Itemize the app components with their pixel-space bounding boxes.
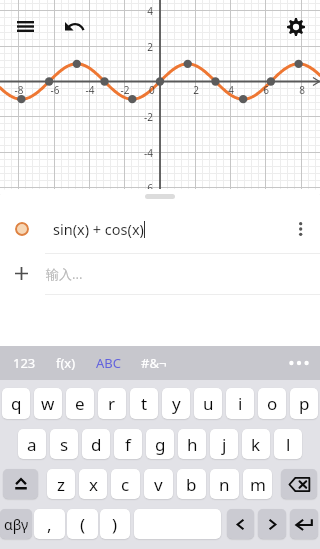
staticText: #&¬ (141, 354, 167, 372)
button[interactable]: More (278, 346, 320, 380)
button[interactable]: x (79, 469, 107, 499)
staticText: -2 (133, 110, 153, 124)
button[interactable]: p (290, 388, 318, 419)
staticText: s (60, 433, 69, 456)
staticText: 0 (149, 83, 155, 97)
staticText: a (27, 433, 37, 456)
button[interactable]: d (82, 429, 110, 459)
button[interactable]: f(x) (46, 346, 86, 380)
staticText: d (91, 433, 102, 456)
staticText: k (251, 433, 261, 456)
button[interactable]: k (242, 429, 270, 459)
staticText: -6 (133, 181, 153, 195)
staticText: ( (80, 513, 86, 536)
staticText: 输入... (46, 265, 83, 283)
staticText: -4 (133, 146, 153, 160)
button[interactable]: t (130, 388, 158, 419)
button[interactable]: s (50, 429, 78, 459)
staticText: v (154, 473, 163, 496)
button[interactable]: r (98, 388, 126, 419)
staticText: 123 (13, 354, 36, 372)
button[interactable]: u (194, 388, 222, 419)
button[interactable]: v (144, 469, 173, 499)
button[interactable]: l (274, 429, 302, 459)
staticText: -2 (115, 83, 135, 97)
staticText: n (219, 473, 230, 496)
button[interactable]: f (114, 429, 142, 459)
button[interactable]: Settings (275, 6, 316, 47)
button[interactable]: e (66, 388, 94, 419)
staticText: e (75, 392, 85, 415)
staticText: f (125, 433, 131, 456)
button[interactable]: Undo (54, 6, 95, 47)
button[interactable]: w (34, 388, 62, 419)
staticText: c (121, 473, 130, 496)
button[interactable]: Menu (4, 6, 46, 47)
button[interactable]: More options (278, 204, 320, 254)
button[interactable]: g (146, 429, 174, 459)
staticText: 6 (256, 83, 276, 97)
staticText: -8 (9, 83, 29, 97)
button[interactable]: o (258, 388, 286, 419)
staticText: 2 (186, 83, 206, 97)
staticText: q (11, 392, 22, 415)
button[interactable]: #&¬ (131, 346, 177, 380)
staticText: l (286, 433, 291, 456)
staticText: -4 (80, 83, 100, 97)
staticText: g (155, 433, 166, 456)
button[interactable]: shift (3, 469, 38, 499)
button[interactable]: ABC (86, 346, 131, 380)
staticText: o (267, 392, 278, 415)
button[interactable]: 123 (3, 346, 46, 380)
staticText: f(x) (56, 354, 76, 372)
staticText: i (238, 392, 243, 415)
button[interactable]: 输入... (0, 253, 320, 294)
button[interactable]: i (226, 388, 254, 419)
staticText: 4 (221, 83, 241, 97)
staticText: x (89, 473, 98, 496)
button[interactable]: q (2, 388, 30, 419)
staticText: u (203, 392, 214, 415)
button[interactable]: ) (100, 509, 130, 539)
staticText: , (47, 513, 52, 536)
button[interactable]: right (258, 509, 286, 539)
button[interactable]: n (210, 469, 239, 499)
staticText: h (187, 433, 198, 456)
button[interactable]: enter (290, 509, 318, 539)
button[interactable]: ( (67, 509, 98, 539)
staticText: m (250, 473, 266, 496)
staticText: 4 (133, 4, 153, 18)
staticText: 2 (133, 40, 153, 54)
button[interactable]: h (178, 429, 206, 459)
button[interactable]: left (227, 509, 254, 539)
staticText: 8 (292, 83, 312, 97)
staticText: ) (112, 513, 118, 536)
button[interactable]: m (243, 469, 272, 499)
button[interactable]: b (177, 469, 206, 499)
button[interactable]: del (281, 469, 317, 499)
staticText: ABC (96, 354, 121, 372)
button[interactable]: , (34, 509, 65, 539)
button[interactable]: c (111, 469, 140, 499)
staticText: w (41, 392, 55, 415)
staticText: t (141, 392, 148, 415)
staticText: -6 (45, 83, 65, 97)
staticText: z (57, 473, 65, 496)
staticText: j (222, 433, 227, 456)
staticText: sin(x) + cos(x) (53, 219, 144, 239)
button[interactable]: z (47, 469, 75, 499)
staticText: αβγ (4, 515, 29, 534)
button[interactable] (134, 509, 221, 539)
staticText: y (172, 392, 181, 415)
button[interactable]: j (210, 429, 238, 459)
button[interactable]: αβγ (0, 509, 32, 539)
button[interactable]: y (162, 388, 190, 419)
button[interactable]: sin(x) + cos(x) (0, 204, 320, 254)
staticText: r (108, 392, 116, 415)
staticText: p (299, 392, 310, 415)
button[interactable]: a (18, 429, 46, 459)
staticText: b (186, 473, 197, 496)
